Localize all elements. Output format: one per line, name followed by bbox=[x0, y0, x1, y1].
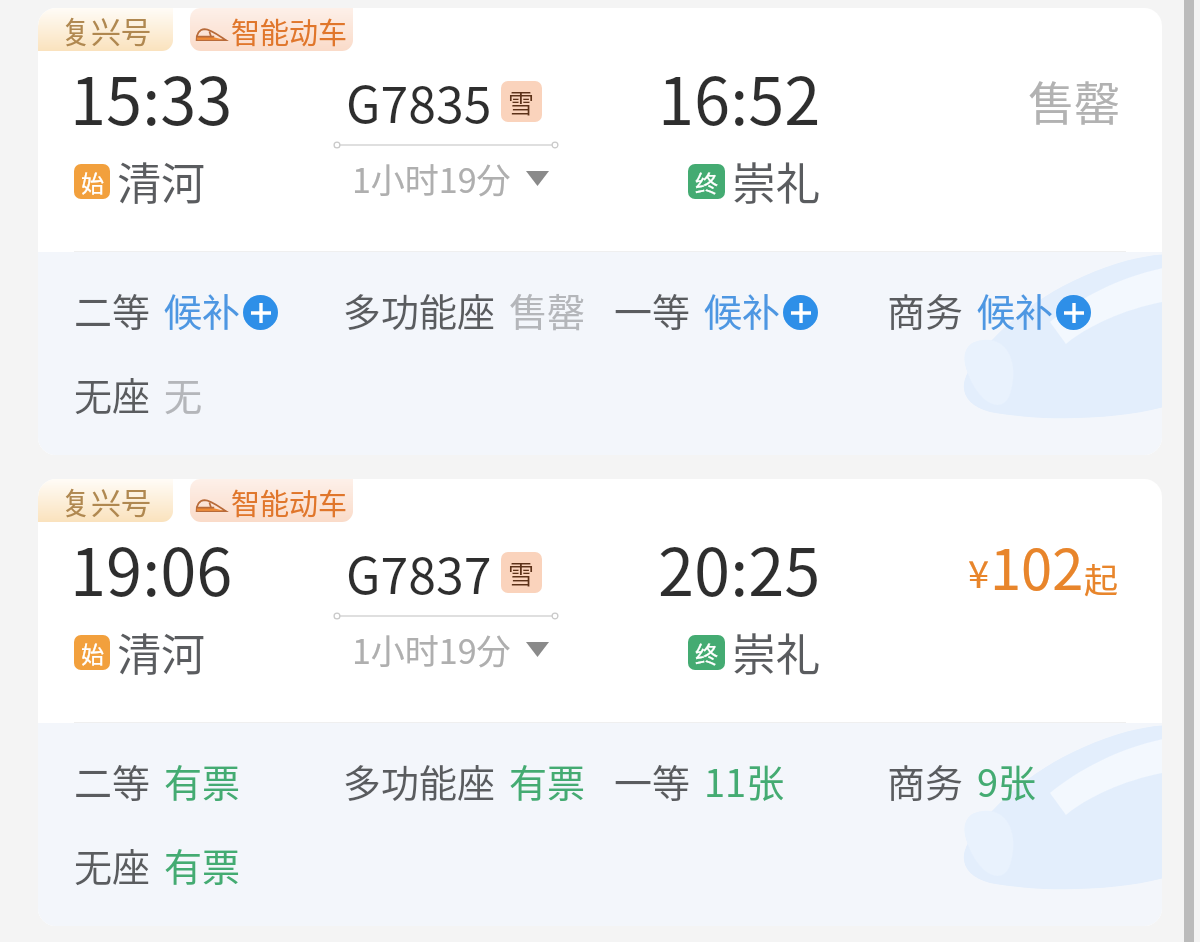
staticText: 无座 bbox=[74, 837, 151, 892]
button[interactable]: 复兴号 bbox=[38, 8, 1162, 455]
button[interactable]: 商务 bbox=[887, 753, 1037, 808]
staticText: 候补 bbox=[164, 282, 241, 337]
staticText: 候补 bbox=[704, 282, 781, 337]
button[interactable]: 多功能座 bbox=[343, 282, 614, 337]
staticText: 15:33 bbox=[70, 50, 233, 144]
staticText: 无座 bbox=[74, 366, 151, 421]
staticText: 无 bbox=[164, 366, 203, 421]
staticText: 始 bbox=[81, 165, 104, 198]
staticText: 智能动车 bbox=[231, 481, 348, 522]
staticText: 清河 bbox=[117, 149, 205, 213]
staticText: 16:52 bbox=[658, 50, 821, 144]
button[interactable]: 售罄 bbox=[1028, 67, 1120, 134]
staticText: 有票 bbox=[509, 753, 586, 808]
staticText: 二等 bbox=[74, 282, 151, 337]
button[interactable]: 二等 bbox=[74, 753, 343, 808]
staticText: 复兴号 bbox=[61, 8, 151, 51]
staticText: 9张 bbox=[977, 753, 1037, 808]
staticText: 一等 bbox=[614, 282, 691, 337]
button[interactable]: 商务 bbox=[887, 282, 1091, 337]
staticText: 崇礼 bbox=[732, 620, 820, 684]
staticText: ¥ bbox=[968, 544, 990, 599]
staticText: G7835 bbox=[346, 65, 492, 137]
staticText: 智能动车 bbox=[231, 10, 348, 51]
button[interactable]: 二等 bbox=[74, 282, 343, 337]
staticText: 复兴号 bbox=[61, 479, 151, 522]
staticText: 一等 bbox=[614, 753, 691, 808]
staticText: 售罄 bbox=[509, 282, 586, 337]
staticText: 11张 bbox=[704, 753, 785, 808]
staticText: 102 bbox=[990, 525, 1084, 606]
staticText: 多功能座 bbox=[343, 282, 496, 337]
staticText: 二等 bbox=[74, 753, 151, 808]
staticText: 19:06 bbox=[70, 521, 233, 615]
staticText: 崇礼 bbox=[732, 149, 820, 213]
staticText: 有票 bbox=[164, 753, 241, 808]
staticText: 商务 bbox=[887, 282, 964, 337]
button[interactable]: ¥ bbox=[968, 525, 1118, 606]
staticText: 终 bbox=[695, 636, 718, 669]
staticText: G7837 bbox=[346, 536, 492, 608]
staticText: 1小时19分 bbox=[352, 154, 511, 203]
staticText: 候补 bbox=[977, 282, 1054, 337]
staticText: 多功能座 bbox=[343, 753, 496, 808]
staticText: 雪 bbox=[508, 83, 535, 121]
staticText: 终 bbox=[695, 165, 718, 198]
staticText: 起 bbox=[1084, 554, 1118, 603]
staticText: 清河 bbox=[117, 620, 205, 684]
button[interactable]: 无座 bbox=[74, 366, 203, 421]
staticText: 20:25 bbox=[658, 521, 821, 615]
button[interactable]: 复兴号 bbox=[38, 479, 1162, 926]
staticText: 售罄 bbox=[1028, 67, 1120, 134]
staticText: 有票 bbox=[164, 837, 241, 892]
button[interactable]: 无座 bbox=[74, 837, 241, 892]
staticText: 雪 bbox=[508, 554, 535, 592]
button[interactable]: 多功能座 bbox=[343, 753, 614, 808]
staticText: 商务 bbox=[887, 753, 964, 808]
staticText: 始 bbox=[81, 636, 104, 669]
button[interactable]: 一等 bbox=[614, 282, 887, 337]
button[interactable]: 一等 bbox=[614, 753, 887, 808]
staticText: 1小时19分 bbox=[352, 625, 511, 674]
